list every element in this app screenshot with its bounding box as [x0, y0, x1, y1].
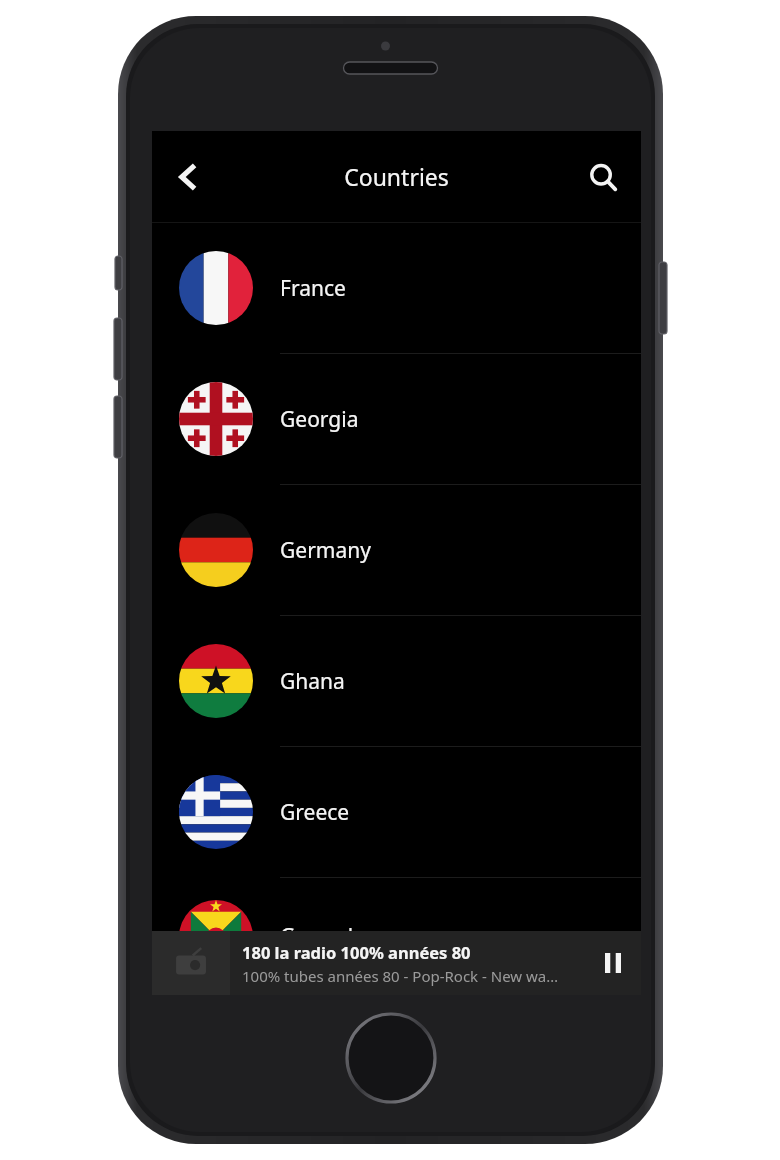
- other: Home: [343, 1010, 439, 1106]
- staticText: 100% tubes années 80 - Pop-Rock - New wa…: [242, 966, 559, 986]
- staticText: 180 la radio 100% années 80: [242, 941, 471, 963]
- button[interactable]: Ghana: [152, 616, 641, 746]
- staticText: Grenada: [280, 922, 365, 951]
- button[interactable]: Pause: [585, 931, 641, 995]
- staticText: Greece: [280, 798, 350, 827]
- staticText: Ghana: [280, 667, 345, 696]
- button[interactable]: 180 la radio 100% années 80: [152, 931, 641, 995]
- button[interactable]: Back: [160, 149, 216, 205]
- staticText: France: [280, 274, 346, 303]
- staticText: Countries: [344, 161, 449, 192]
- button[interactable]: Georgia: [152, 354, 641, 484]
- button[interactable]: Germany: [152, 485, 641, 615]
- button[interactable]: Grenada: [152, 878, 641, 995]
- button[interactable]: Search: [575, 149, 631, 205]
- staticText: Germany: [280, 536, 371, 565]
- button[interactable]: France: [152, 223, 641, 353]
- staticText: Georgia: [280, 405, 359, 434]
- button[interactable]: Greece: [152, 747, 641, 877]
